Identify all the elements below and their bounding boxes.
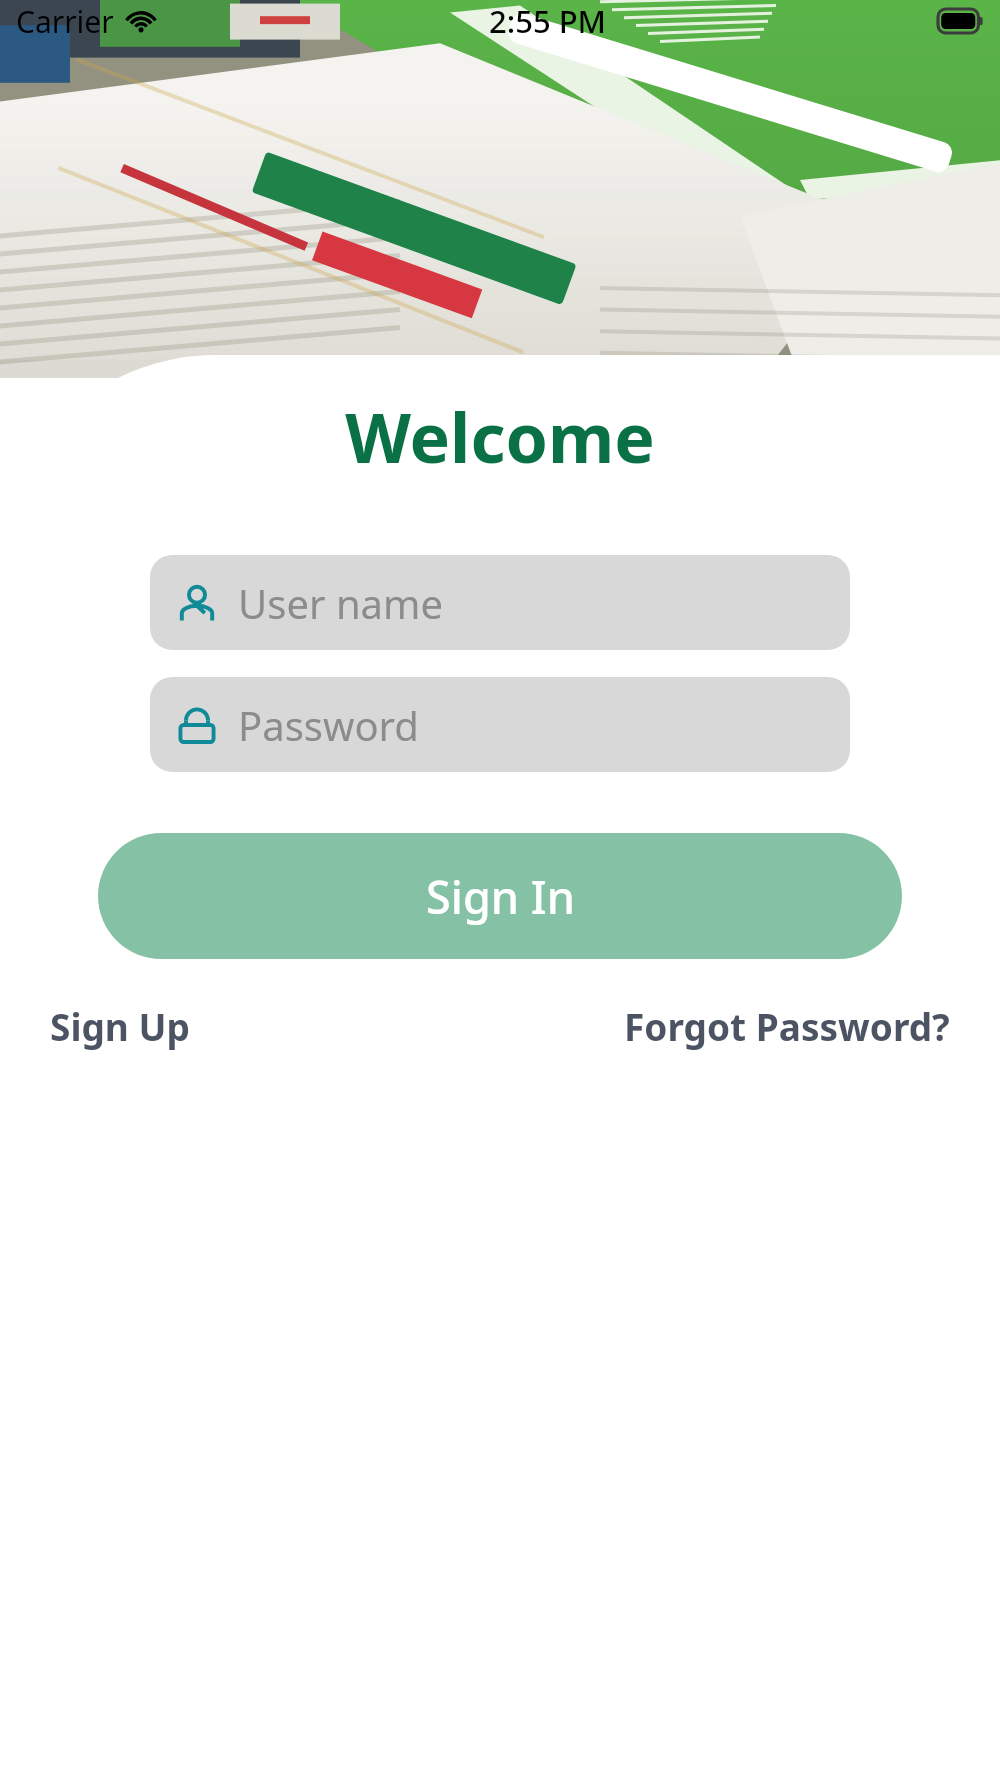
staticText: Sign In — [426, 866, 575, 927]
button[interactable]: User name — [150, 555, 850, 650]
staticText: Password — [238, 698, 419, 752]
button[interactable]: Sign Up — [46, 995, 194, 1057]
staticText: Welcome — [345, 390, 655, 483]
button[interactable]: Forgot Password? — [620, 995, 954, 1057]
staticText: Sign Up — [50, 1001, 190, 1051]
staticText: Carrier — [16, 1, 114, 42]
button[interactable]: Password — [150, 677, 850, 772]
button[interactable]: Sign In — [98, 833, 902, 959]
staticText: Forgot Password? — [624, 1001, 950, 1051]
staticText: 2:55 PM — [489, 0, 607, 42]
staticText: User name — [238, 576, 443, 630]
